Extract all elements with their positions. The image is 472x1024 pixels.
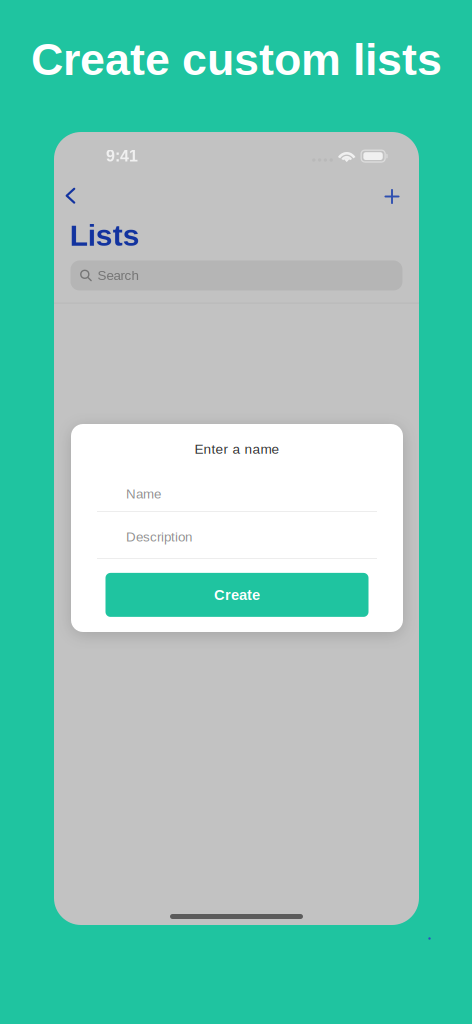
staticText: Description [126,530,192,544]
button[interactable]: Back [53,179,87,213]
button[interactable]: Search [70,260,402,290]
staticText: Create [214,587,260,603]
button[interactable]: Create [105,573,368,617]
staticText: Search [97,268,138,283]
staticText: Enter a name [194,441,279,457]
staticText: Create custom lists [31,34,442,84]
staticText: 9:41 [106,147,138,165]
button[interactable]: Description [71,517,403,557]
staticText: Name [126,487,161,501]
button[interactable]: Name [71,474,403,514]
staticText: Lists [70,219,140,252]
button[interactable]: New list [375,179,409,213]
